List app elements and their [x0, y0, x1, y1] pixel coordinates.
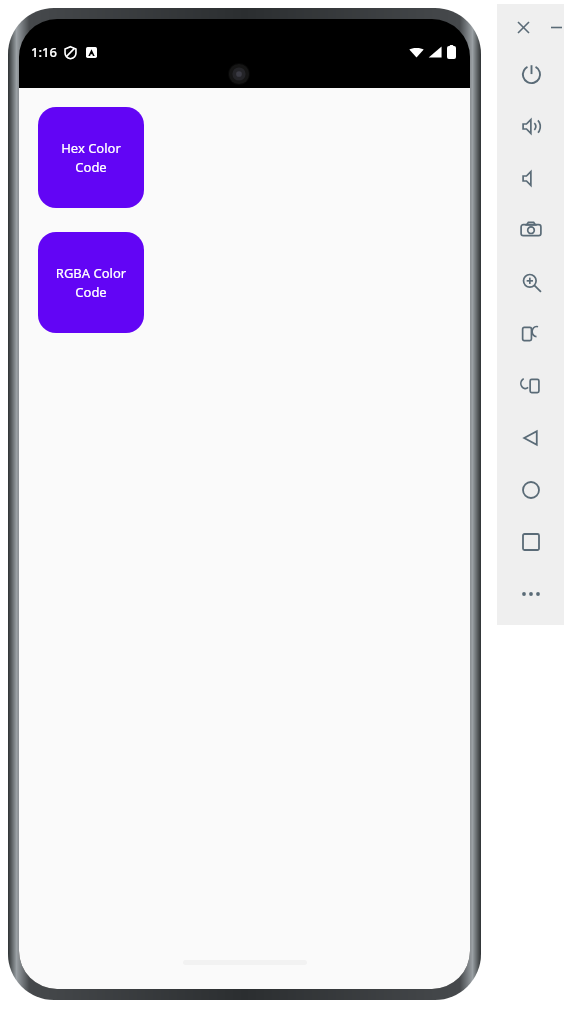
staticText: RGBA Color Code: [44, 264, 138, 301]
button[interactable]: Rotate right: [505, 360, 557, 412]
button[interactable]: Volume down: [505, 152, 557, 204]
button[interactable]: RGBA Color Code: [38, 232, 144, 333]
button[interactable]: More: [505, 568, 557, 620]
staticText: Hex Color Code: [44, 139, 138, 176]
button[interactable]: Zoom: [505, 256, 557, 308]
button[interactable]: Screenshot: [505, 204, 557, 256]
button[interactable]: Volume up: [505, 100, 557, 152]
button[interactable]: Close: [497, 14, 549, 40]
button[interactable]: Overview: [505, 516, 557, 568]
button[interactable]: Home: [505, 464, 557, 516]
button[interactable]: Minimize: [549, 14, 564, 40]
button[interactable]: Rotate left: [505, 308, 557, 360]
button[interactable]: Back: [505, 412, 557, 464]
staticText: 1:16: [31, 43, 57, 61]
button[interactable]: Power: [505, 48, 557, 100]
button[interactable]: Hex Color Code: [38, 107, 144, 208]
